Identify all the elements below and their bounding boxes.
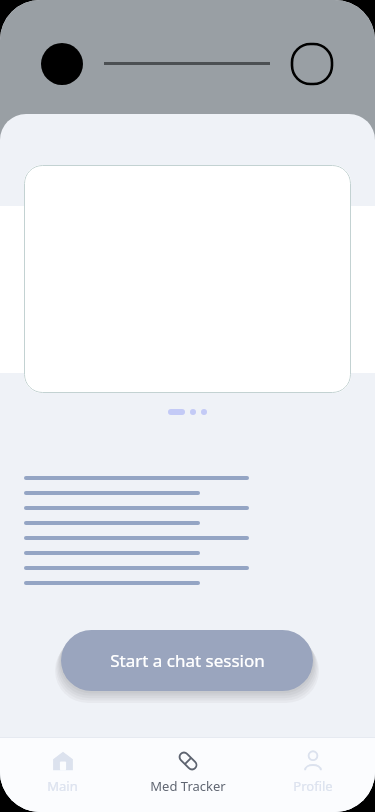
staticText: Main <box>47 777 78 795</box>
button[interactable]: Main <box>0 737 125 812</box>
button[interactable]: Med Tracker <box>125 737 250 812</box>
button[interactable]: Menu <box>290 42 334 86</box>
button[interactable]: Profile <box>250 737 375 812</box>
button[interactable]: Start a chat session <box>61 630 313 691</box>
staticText: Start a chat session <box>110 649 265 672</box>
button[interactable]: Avatar <box>41 43 83 85</box>
button[interactable] <box>24 165 351 393</box>
staticText: Med Tracker <box>150 777 226 795</box>
staticText: Profile <box>293 777 333 795</box>
